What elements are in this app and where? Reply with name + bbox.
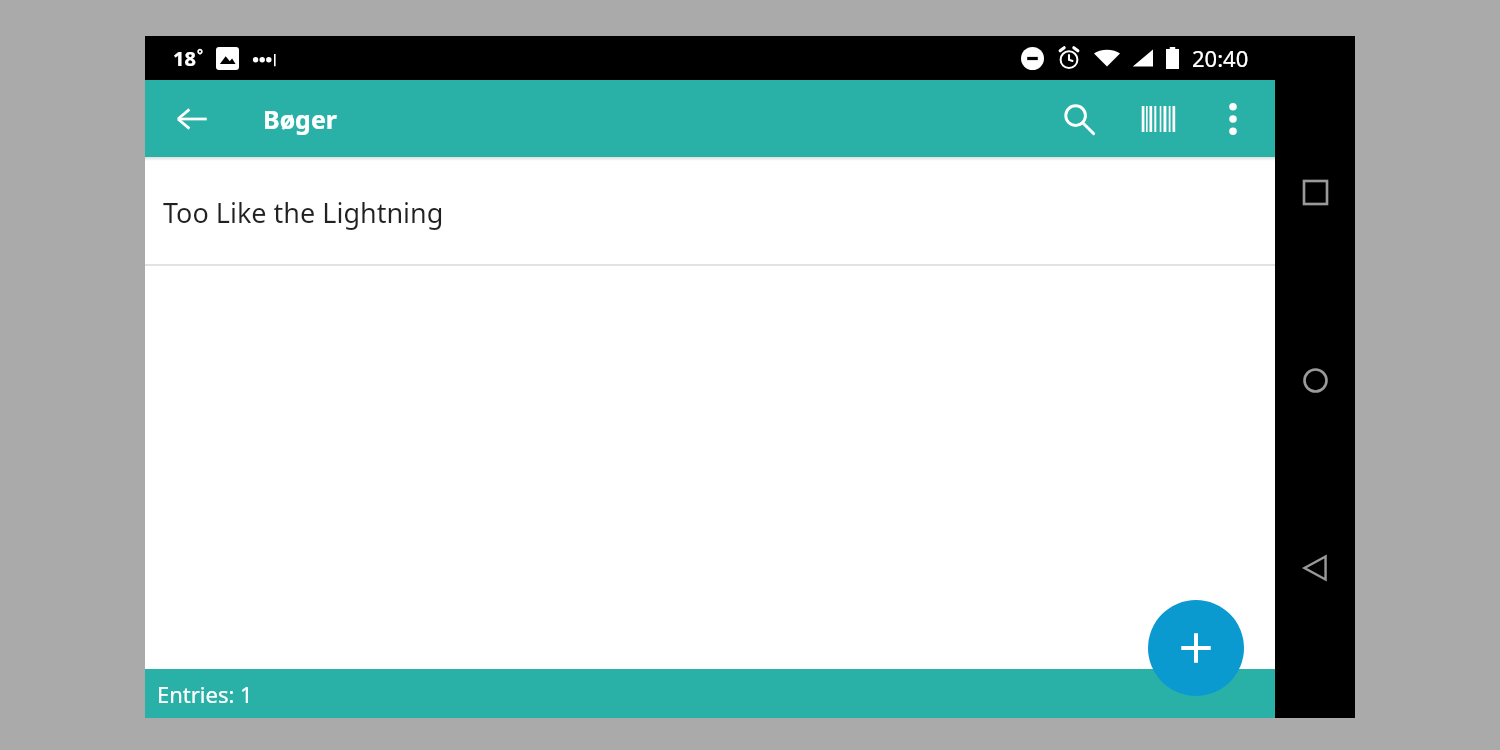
button[interactable]: Back [1287, 540, 1343, 596]
staticText: Bøger [263, 102, 338, 136]
staticText: 20:40 [1192, 43, 1249, 73]
staticText: Entries: 1 [157, 679, 253, 709]
button[interactable]: Home [1287, 352, 1343, 408]
staticText: ° [197, 45, 203, 64]
staticText: Too Like the Lightning [163, 194, 444, 231]
button[interactable]: Too Like the Lightning [145, 161, 1275, 266]
button[interactable]: Entries: 1 [145, 669, 1275, 718]
staticText: 18 [173, 45, 196, 72]
button[interactable]: Back [166, 93, 218, 145]
button[interactable]: Add entry [1148, 600, 1244, 696]
button[interactable]: Scan barcode [1127, 87, 1191, 151]
button[interactable]: Recent apps [1287, 164, 1343, 220]
button[interactable]: Search [1047, 87, 1111, 151]
button[interactable]: More options [1201, 87, 1265, 151]
